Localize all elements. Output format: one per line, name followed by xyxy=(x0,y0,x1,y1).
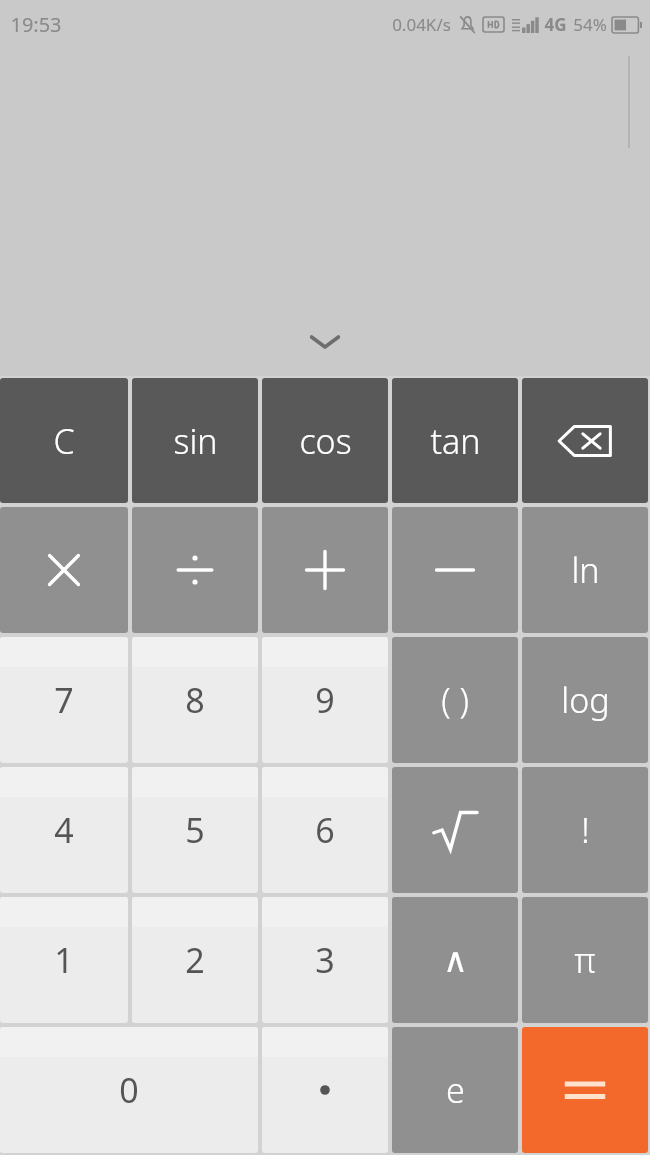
button[interactable]: Plus xyxy=(262,507,388,633)
staticText: cos xyxy=(299,418,352,464)
button[interactable]: 1 xyxy=(0,897,128,1023)
staticText: C xyxy=(53,418,75,464)
staticText: 5 xyxy=(185,807,205,853)
button[interactable]: 6 xyxy=(262,767,388,893)
button[interactable]: ln xyxy=(522,507,648,633)
button[interactable]: 5 xyxy=(132,767,258,893)
staticText: ∧ xyxy=(443,940,468,980)
staticText: ( ) xyxy=(441,677,469,723)
staticText: 9 xyxy=(315,677,335,723)
staticText: 8 xyxy=(185,677,205,723)
button[interactable]: Minus xyxy=(392,507,518,633)
button[interactable]: 8 xyxy=(132,637,258,763)
button[interactable]: 0 xyxy=(0,1027,258,1153)
button[interactable]: cos xyxy=(262,378,388,503)
staticText: sin xyxy=(173,418,218,464)
staticText: 1 xyxy=(54,937,74,983)
button[interactable]: π xyxy=(522,897,648,1023)
staticText: e xyxy=(446,1067,465,1113)
button[interactable]: e xyxy=(392,1027,518,1153)
staticText: 6 xyxy=(315,807,335,853)
button[interactable]: Multiply xyxy=(0,507,128,633)
button[interactable]: ∧ xyxy=(392,897,518,1023)
staticText: 0 xyxy=(119,1067,139,1113)
button[interactable]: Square root xyxy=(392,767,518,893)
staticText: 4G xyxy=(544,13,567,36)
staticText: 7 xyxy=(54,677,74,723)
staticText: 54% xyxy=(573,13,607,36)
button[interactable]: sin xyxy=(132,378,258,503)
button[interactable]: 4 xyxy=(0,767,128,893)
button[interactable]: 7 xyxy=(0,637,128,763)
button[interactable]: Collapse keypad xyxy=(292,322,358,362)
staticText: log xyxy=(561,677,610,723)
button[interactable]: C xyxy=(0,378,128,503)
staticText: 2 xyxy=(185,937,205,983)
button[interactable]: ! xyxy=(522,767,648,893)
staticText: 3 xyxy=(315,937,335,983)
staticText: π xyxy=(574,937,596,983)
button[interactable]: Backspace xyxy=(522,378,648,503)
button[interactable]: Divide xyxy=(132,507,258,633)
staticText: ! xyxy=(581,807,590,853)
button[interactable]: 9 xyxy=(262,637,388,763)
button[interactable]: Equals xyxy=(522,1027,648,1153)
staticText: ln xyxy=(571,547,600,593)
button[interactable]: 2 xyxy=(132,897,258,1023)
staticText: tan xyxy=(430,418,481,464)
button[interactable]: Decimal point xyxy=(262,1027,388,1153)
staticText: 4 xyxy=(54,807,74,853)
button[interactable]: tan xyxy=(392,378,518,503)
button[interactable]: log xyxy=(522,637,648,763)
staticText: 19:53 xyxy=(10,11,62,38)
staticText: 0.04K/s xyxy=(392,13,451,36)
button[interactable]: 3 xyxy=(262,897,388,1023)
button[interactable]: ( ) xyxy=(392,637,518,763)
